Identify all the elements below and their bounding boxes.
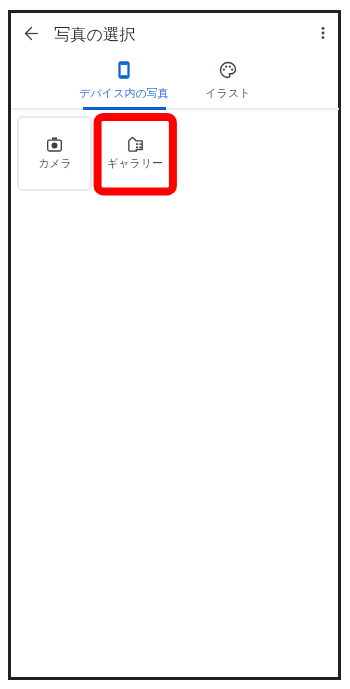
button[interactable]: ギャラリー bbox=[98, 116, 173, 191]
staticText: イラスト bbox=[205, 86, 251, 100]
staticText: 写真の選択 bbox=[54, 24, 136, 44]
button[interactable]: カメラ bbox=[17, 116, 92, 191]
staticText: ギャラリー bbox=[107, 156, 164, 170]
button[interactable]: デバイス内の写真 bbox=[72, 52, 176, 110]
staticText: カメラ bbox=[38, 156, 72, 170]
staticText: デバイス内の写真 bbox=[79, 86, 169, 100]
button[interactable]: Back bbox=[19, 21, 43, 45]
button[interactable]: More options bbox=[311, 21, 335, 45]
button[interactable]: イラスト bbox=[176, 52, 280, 110]
